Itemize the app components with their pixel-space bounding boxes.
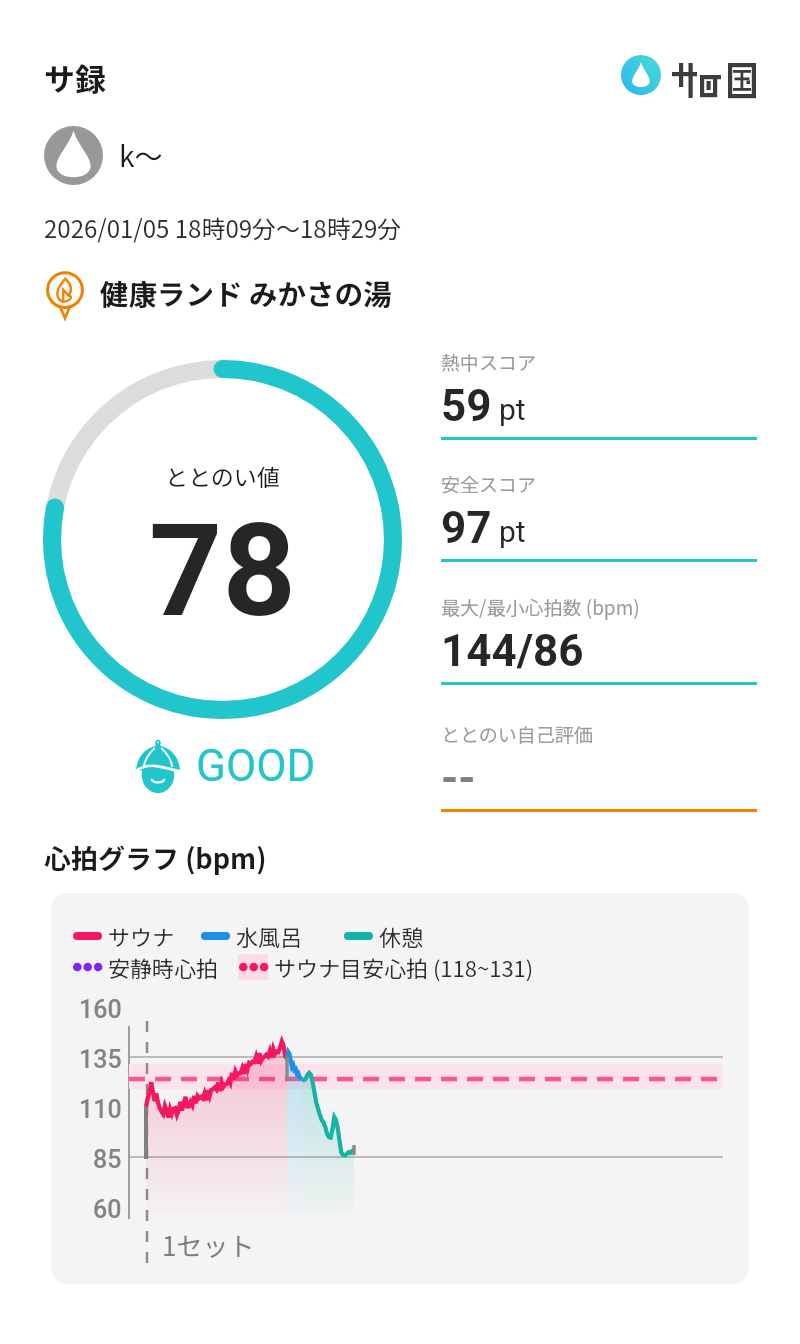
staticText: 1セット bbox=[162, 1226, 255, 1264]
button[interactable]: ととのい自己評価 bbox=[441, 720, 757, 812]
staticText: 健康ランド みかさの湯 bbox=[100, 272, 392, 313]
staticText: 110 bbox=[79, 1095, 122, 1124]
staticText: 144/86 bbox=[441, 625, 584, 677]
staticText: 59 bbox=[441, 380, 492, 432]
staticText: 熱中スコア bbox=[441, 348, 537, 376]
button[interactable]: 健康ランド みかさの湯 bbox=[44, 268, 392, 320]
staticText: ととのい自己評価 bbox=[441, 720, 593, 748]
staticText: 安全スコア bbox=[441, 470, 537, 498]
staticText: 安静時心拍 bbox=[108, 951, 219, 983]
staticText: 休憩 bbox=[379, 920, 424, 952]
button[interactable]: サの国 bbox=[621, 55, 758, 95]
staticText: 2026/01/05 18時09分〜18時29分 bbox=[44, 210, 402, 245]
staticText: 60 bbox=[93, 1195, 122, 1224]
staticText: サ録 bbox=[44, 55, 106, 95]
staticText: 85 bbox=[93, 1145, 122, 1174]
staticText: 最大/最小心拍数 (bpm) bbox=[441, 593, 640, 621]
button[interactable]: k〜 bbox=[44, 126, 163, 185]
staticText: サウナ目安心拍 (118~131) bbox=[274, 951, 534, 983]
button[interactable]: 熱中スコア bbox=[441, 348, 757, 440]
staticText: GOOD bbox=[196, 740, 316, 792]
button[interactable]: 安全スコア bbox=[441, 470, 757, 562]
staticText: -- bbox=[441, 752, 476, 804]
staticText: 水風呂 bbox=[236, 920, 303, 952]
staticText: 78 bbox=[149, 496, 296, 646]
staticText: k〜 bbox=[119, 135, 163, 176]
staticText: 135 bbox=[79, 1045, 122, 1074]
staticText: サウナ bbox=[108, 920, 175, 952]
staticText: 心拍グラフ (bpm) bbox=[44, 838, 267, 877]
button[interactable]: 最大/最小心拍数 (bpm) bbox=[441, 593, 757, 685]
staticText: 160 bbox=[79, 995, 122, 1024]
staticText: 97 bbox=[441, 502, 492, 554]
staticText: pt bbox=[499, 392, 526, 427]
staticText: pt bbox=[499, 514, 526, 549]
staticText: ととのい値 bbox=[165, 459, 280, 492]
